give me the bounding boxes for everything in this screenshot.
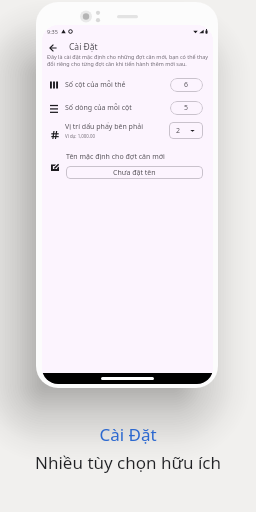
staticText: Cài Đặt xyxy=(69,41,98,53)
staticText: Vị trí dấu phẩy bên phải xyxy=(65,122,143,132)
staticText: Cài Đặt xyxy=(99,423,157,446)
button[interactable]: Số dòng của mỗi cột xyxy=(42,97,213,119)
staticText: Nhiều tùy chọn hữu ích xyxy=(35,451,221,474)
button[interactable]: Chưa đặt tên xyxy=(66,166,203,179)
staticText: Đây là cài đặt mặc định cho những đợt câ… xyxy=(47,53,210,67)
staticText: Ví dụ: 1,000.00 xyxy=(65,133,96,139)
staticText: Số cột của mỗi thẻ xyxy=(65,80,126,90)
staticText: 2 xyxy=(176,126,181,136)
button[interactable]: Back xyxy=(46,41,59,54)
button[interactable]: 2 xyxy=(169,122,203,139)
staticText: 9:35 xyxy=(47,28,58,35)
staticText: Chưa đặt tên xyxy=(113,168,156,178)
button[interactable]: 5 xyxy=(170,101,203,115)
button[interactable]: 6 xyxy=(170,78,203,92)
staticText: Tên mặc định cho đợt cân mới xyxy=(66,152,165,162)
other: Edit default name xyxy=(51,163,59,171)
staticText: 5 xyxy=(184,103,189,113)
staticText: 6 xyxy=(184,80,189,90)
button[interactable]: Số cột của mỗi thẻ xyxy=(42,74,213,96)
staticText: Số dòng của mỗi cột xyxy=(65,103,132,113)
button[interactable]: Edit default name xyxy=(42,152,213,184)
button[interactable]: Vị trí dấu phẩy bên phải xyxy=(42,118,213,142)
